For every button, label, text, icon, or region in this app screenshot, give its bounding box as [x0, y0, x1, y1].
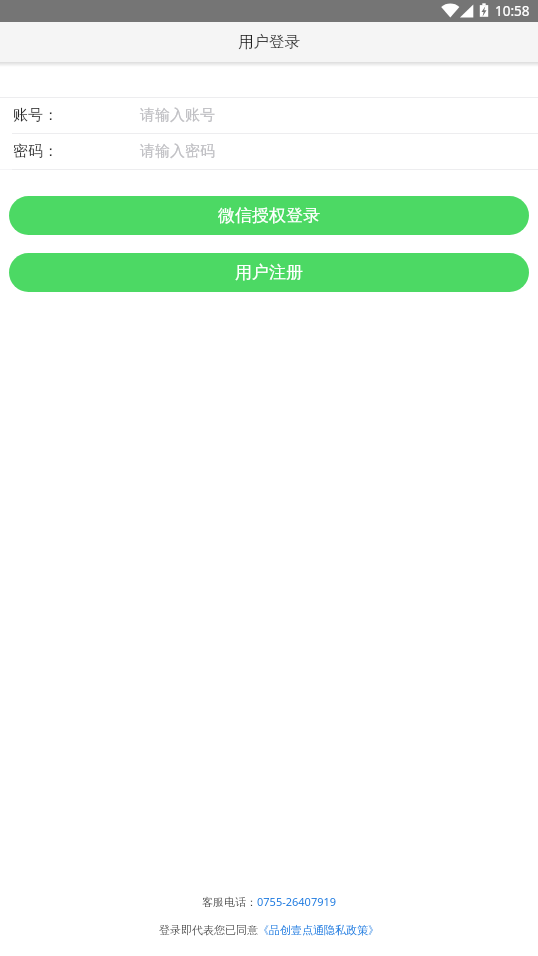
button[interactable]: 微信授权登录 [9, 196, 529, 235]
button[interactable]: 密码： [0, 134, 538, 169]
staticText: 用户注册 [235, 262, 303, 283]
staticText: 请输入密码 [140, 142, 215, 161]
staticText: 账号： [13, 106, 58, 125]
staticText: 客服电话：0755-26407919 [202, 894, 337, 909]
button[interactable]: 用户注册 [9, 253, 529, 292]
staticText: 用户登录 [238, 32, 300, 52]
staticText: 密码： [13, 142, 58, 161]
staticText: 请输入账号 [140, 106, 215, 125]
staticText: 登录即代表您已同意《品创壹点通隐私政策》 [159, 923, 379, 937]
staticText: 10:58 [495, 2, 530, 20]
button[interactable]: 客服电话：0755-26407919 [202, 894, 337, 909]
staticText: 微信授权登录 [218, 205, 320, 226]
button[interactable]: 账号： [0, 98, 538, 133]
button[interactable]: 登录即代表您已同意《品创壹点通隐私政策》 [159, 923, 379, 937]
other: Wi-Fi, mobile signal, battery charging [0, 0, 538, 22]
